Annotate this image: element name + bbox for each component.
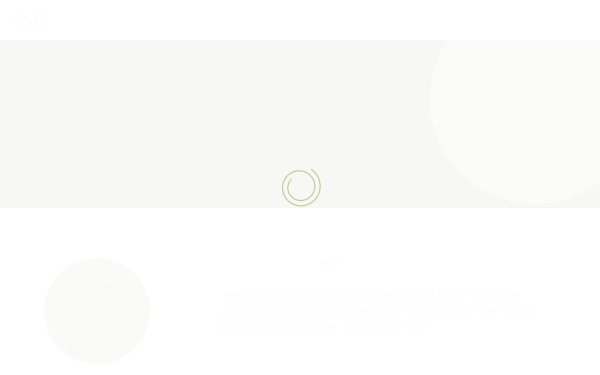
button[interactable]: Author profile photo: [44, 258, 150, 364]
